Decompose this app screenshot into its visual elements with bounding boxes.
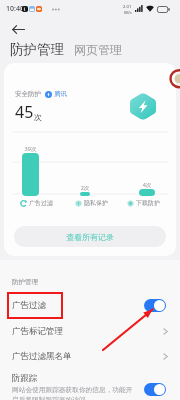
staticText: 2次 xyxy=(76,184,94,192)
button[interactable]: 防护管理 xyxy=(10,41,64,58)
staticText: 广告过滤黑名单 xyxy=(12,351,72,362)
staticText: 广告过滤 xyxy=(29,199,53,207)
staticText: 广告过滤 xyxy=(12,300,46,311)
staticText: 10:40 xyxy=(6,4,24,14)
staticText: 4次 xyxy=(138,181,156,189)
staticText: 查看所有记录 xyxy=(66,232,114,242)
button[interactable]: 下载防护 xyxy=(127,199,160,207)
button[interactable]: 广告过滤黑名单 xyxy=(0,343,180,369)
staticText: 安全防护 xyxy=(15,90,41,98)
staticText: 防跟踪 xyxy=(12,373,38,384)
staticText: 2.01 xyxy=(123,4,132,10)
button[interactable]: 广告过滤 xyxy=(0,292,180,318)
staticText: KB/s xyxy=(124,10,132,15)
button[interactable]: 广告过滤 xyxy=(20,199,53,207)
staticText: 次 xyxy=(34,112,42,122)
button[interactable]: 隐私保护 xyxy=(75,199,108,207)
staticText: 广告标记管理 xyxy=(12,326,63,337)
staticText: 防护管理 xyxy=(12,278,38,286)
button[interactable]: 广告标记管理 xyxy=(0,318,180,344)
staticText: 39次 xyxy=(22,145,39,153)
staticText: 45 xyxy=(15,101,34,123)
staticText: 腾讯 xyxy=(54,90,67,98)
button[interactable]: 防跟踪 xyxy=(0,370,180,400)
staticText: 下载防护 xyxy=(136,199,160,207)
button[interactable]: Back xyxy=(6,20,30,38)
button[interactable]: 网页管理 xyxy=(74,42,122,57)
button[interactable]: Toggle switch xyxy=(144,383,166,396)
button[interactable]: Toggle switch xyxy=(144,299,166,312)
staticText: 网站会使用跟踪器获取你的信息，功能开启后将限制跟踪器的访问 xyxy=(12,386,136,400)
staticText: 隐私保护 xyxy=(84,199,108,207)
button[interactable]: 查看所有记录 xyxy=(14,226,166,247)
